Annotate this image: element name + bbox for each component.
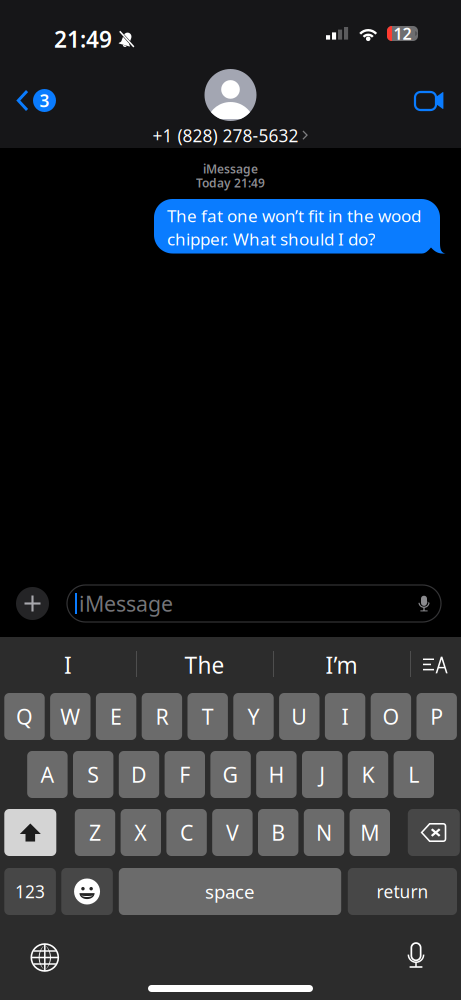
staticText: P <box>430 702 443 731</box>
button[interactable]: FaceTime <box>399 80 461 122</box>
staticText: The fat one won’t fit in the wood chippe… <box>167 204 421 250</box>
button[interactable]: N <box>304 809 344 856</box>
staticText: Z <box>89 818 101 847</box>
button[interactable]: E <box>96 693 136 740</box>
button[interactable]: T <box>187 693 228 740</box>
button[interactable]: Switch keyboard <box>17 930 72 985</box>
staticText: K <box>361 760 374 789</box>
button[interactable]: Shift <box>4 809 56 856</box>
staticText: C <box>180 818 193 847</box>
button[interactable]: Y <box>233 693 274 740</box>
staticText: O <box>382 702 399 731</box>
staticText: iMessage <box>203 161 258 177</box>
staticText: A <box>40 760 54 789</box>
button[interactable]: D <box>119 751 159 798</box>
staticText: T <box>202 702 214 731</box>
button[interactable]: G <box>210 751 251 798</box>
staticText: R <box>155 702 168 731</box>
button[interactable]: iMessage <box>67 585 441 622</box>
staticText: W <box>60 702 80 731</box>
staticText: 123 <box>15 880 45 903</box>
staticText: I’m <box>325 650 357 680</box>
staticText: iMessage <box>79 589 173 618</box>
button[interactable]: O <box>371 693 411 740</box>
staticText: Y <box>247 702 259 731</box>
button[interactable]: B <box>258 809 298 856</box>
button[interactable]: P <box>416 693 457 740</box>
button[interactable]: L <box>394 751 434 798</box>
button[interactable]: Back to conversations <box>0 79 68 122</box>
button[interactable]: return <box>348 868 457 915</box>
staticText: M <box>360 818 379 847</box>
staticText: +1 (828) 278-5632 <box>152 124 298 147</box>
button[interactable]: S <box>73 751 113 798</box>
button[interactable]: X <box>121 809 161 856</box>
staticText: F <box>179 760 190 789</box>
button[interactable]: Text formatting <box>410 637 461 693</box>
button[interactable]: K <box>348 751 388 798</box>
staticText: D <box>131 760 147 789</box>
button[interactable]: 123 <box>4 868 56 915</box>
staticText: N <box>316 818 332 847</box>
staticText: 12 <box>393 23 411 44</box>
button[interactable]: M <box>350 809 390 856</box>
staticText: E <box>110 702 122 731</box>
button[interactable]: C <box>166 809 207 856</box>
button[interactable]: I <box>0 637 136 693</box>
button[interactable]: Dictation <box>392 928 440 985</box>
staticText: 21:49 <box>54 24 112 54</box>
button[interactable]: A <box>27 751 68 798</box>
button[interactable]: R <box>142 693 182 740</box>
button[interactable]: I’m <box>273 637 410 693</box>
button[interactable]: Delete <box>408 809 460 856</box>
button[interactable]: Z <box>75 809 115 856</box>
button[interactable]: H <box>256 751 297 798</box>
staticText: B <box>271 818 285 847</box>
staticText: Today 21:49 <box>196 175 265 191</box>
staticText: H <box>268 760 284 789</box>
staticText: I <box>342 702 349 731</box>
button[interactable]: +1 (828) 278-5632 <box>152 69 308 147</box>
staticText: S <box>87 760 99 789</box>
button[interactable]: Emoji keyboard <box>61 868 113 915</box>
button[interactable]: U <box>279 693 319 740</box>
staticText: Q <box>16 702 33 731</box>
staticText: The <box>184 650 224 680</box>
button[interactable]: The <box>136 637 273 693</box>
button[interactable]: F <box>165 751 205 798</box>
staticText: U <box>291 702 307 731</box>
staticText: G <box>223 760 239 789</box>
staticText: X <box>134 818 147 847</box>
staticText: 3 <box>39 89 49 112</box>
staticText: I <box>64 650 72 680</box>
button[interactable]: W <box>50 693 90 740</box>
staticText: J <box>319 760 325 789</box>
staticText: space <box>205 879 255 904</box>
button[interactable]: Q <box>4 693 45 740</box>
button[interactable]: space <box>119 868 341 915</box>
staticText: V <box>226 818 239 847</box>
button[interactable]: V <box>212 809 253 856</box>
staticText: return <box>376 880 428 903</box>
button[interactable]: I <box>325 693 365 740</box>
staticText: L <box>408 760 419 789</box>
button[interactable]: J <box>302 751 342 798</box>
button[interactable]: Add attachment <box>16 587 49 620</box>
